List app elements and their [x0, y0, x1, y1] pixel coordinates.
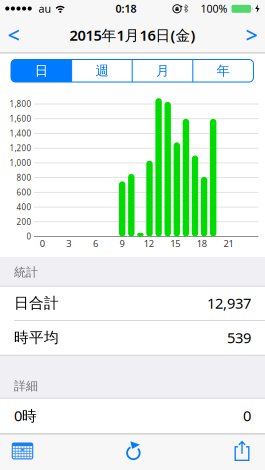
staticText: 12	[144, 237, 154, 250]
staticText: 統計	[14, 265, 38, 280]
staticText: 0:18	[115, 1, 136, 16]
staticText: 400	[16, 202, 31, 212]
staticText: 1,400	[9, 128, 31, 139]
staticText: au	[38, 2, 51, 16]
staticText: 200	[16, 216, 31, 227]
staticText: 12,937	[207, 293, 251, 313]
staticText: <	[7, 20, 19, 49]
staticText: 15	[170, 237, 180, 250]
staticText: 539	[227, 328, 251, 347]
staticText: 6	[93, 237, 98, 250]
staticText: 18	[197, 237, 207, 250]
staticText: 600	[16, 187, 31, 198]
staticText: 9	[119, 237, 124, 250]
staticText: 0	[26, 231, 31, 242]
staticText: 日合計	[14, 294, 59, 312]
staticText: 800	[16, 172, 31, 183]
staticText: 1,600	[9, 113, 31, 124]
staticText: 時平均	[14, 328, 59, 346]
staticText: 0	[40, 237, 45, 250]
staticText: 日	[35, 63, 48, 79]
staticText: 3	[66, 237, 71, 250]
staticText: 0	[243, 406, 251, 425]
staticText: 1,000	[9, 158, 31, 168]
staticText: 21	[223, 237, 233, 250]
staticText: 月	[156, 63, 169, 79]
staticText: 0時	[14, 406, 37, 425]
staticText: 年	[217, 63, 230, 79]
staticText: >	[245, 20, 257, 49]
staticText: 1,200	[9, 143, 31, 153]
staticText: 1,800	[9, 99, 31, 109]
staticText: 2015年1月16日(金)	[69, 25, 195, 45]
staticText: 詳細	[14, 379, 38, 393]
staticText: 100%	[200, 1, 227, 16]
staticText: 週	[95, 63, 108, 79]
